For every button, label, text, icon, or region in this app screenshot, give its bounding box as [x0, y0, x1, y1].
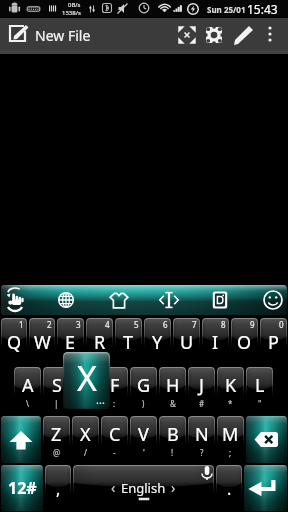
button[interactable]: Shift — [1, 416, 41, 463]
button[interactable]: C — [101, 416, 128, 463]
staticText: & — [170, 398, 176, 409]
button[interactable]: S — [43, 367, 70, 414]
staticText: / — [84, 447, 87, 458]
staticText: ; — [229, 447, 232, 458]
button[interactable]: 7 — [173, 318, 200, 365]
staticText: # — [199, 398, 205, 409]
button[interactable]: Edit — [232, 23, 256, 47]
staticText: K — [225, 373, 237, 398]
staticText: ... — [96, 392, 105, 407]
staticText: ? — [200, 447, 204, 458]
button[interactable]: K — [217, 367, 244, 414]
staticText: Z — [51, 422, 62, 447]
staticText: X — [77, 355, 97, 401]
button[interactable]: Fullscreen — [175, 23, 199, 47]
button[interactable]: 0 — [260, 318, 287, 365]
staticText: W — [34, 330, 51, 355]
staticText: Q — [7, 330, 22, 355]
button[interactable]: Backspace — [246, 416, 287, 463]
button[interactable]: Enter — [244, 465, 287, 511]
staticText: ‹ — [111, 478, 116, 497]
staticText: B — [167, 422, 179, 447]
button[interactable]: Emoji — [258, 285, 287, 315]
staticText: Sun 25/01 — [207, 4, 246, 15]
button[interactable]: More options — [259, 23, 281, 45]
staticText: 1 — [19, 319, 24, 330]
staticText: 9 — [250, 319, 255, 330]
button[interactable]: 8 — [202, 318, 229, 365]
button[interactable]: Language — [51, 285, 81, 315]
button[interactable]: D — [72, 367, 99, 414]
button[interactable]: A — [14, 367, 41, 414]
button[interactable]: Symbols — [1, 465, 43, 511]
button[interactable]: Clipboard — [205, 285, 235, 315]
staticText: 1538/s — [62, 9, 81, 17]
staticText: * — [228, 398, 233, 409]
button[interactable]: Space — [73, 465, 214, 511]
button[interactable]: J — [188, 367, 215, 414]
staticText: 15:43 — [247, 1, 278, 17]
button[interactable]: N — [188, 416, 215, 463]
staticText: - — [113, 447, 116, 458]
staticText: 3 — [76, 319, 81, 330]
button[interactable]: 4 — [86, 318, 113, 365]
button[interactable]: Z — [43, 416, 70, 463]
staticText: A — [22, 373, 34, 398]
staticText: › — [171, 478, 176, 497]
button[interactable]: 3 — [57, 318, 84, 365]
staticText: 0 — [279, 319, 284, 330]
button[interactable]: New File — [35, 26, 91, 45]
button[interactable]: Theme — [104, 285, 134, 315]
button[interactable]: Settings — [202, 23, 226, 47]
button[interactable]: X — [72, 416, 99, 463]
staticText: E — [65, 330, 76, 355]
staticText: : — [113, 398, 116, 409]
button[interactable]: 6 — [144, 318, 171, 365]
staticText: | — [54, 398, 59, 409]
button[interactable]: X key preview — [63, 352, 110, 409]
button[interactable]: B — [159, 416, 186, 463]
staticText: H — [166, 373, 180, 398]
button[interactable]: 9 — [231, 318, 258, 365]
button[interactable]: Edit file — [6, 22, 30, 46]
staticText: S — [52, 373, 62, 398]
button[interactable]: 5 — [115, 318, 142, 365]
button[interactable]: H — [159, 367, 186, 414]
staticText: @ — [53, 447, 61, 458]
staticText: C — [109, 422, 121, 447]
staticText: \ — [26, 398, 29, 409]
staticText: ! — [171, 447, 174, 458]
staticText: " — [258, 398, 262, 409]
staticText: , — [56, 478, 61, 500]
button[interactable]: , — [45, 465, 71, 511]
staticText: I — [212, 330, 219, 355]
staticText: N — [195, 422, 209, 447]
staticText: . — [227, 478, 232, 500]
staticText: 12# — [8, 477, 37, 499]
staticText: F — [110, 373, 120, 398]
staticText: P — [268, 330, 279, 355]
button[interactable]: Move cursor — [154, 285, 184, 315]
button[interactable]: F — [101, 367, 128, 414]
staticText: D — [79, 373, 93, 398]
button[interactable]: M — [217, 416, 244, 463]
button[interactable]: L — [246, 367, 273, 414]
staticText: R — [94, 330, 106, 355]
button[interactable]: Gesture input — [1, 285, 30, 315]
staticText: M — [222, 422, 239, 447]
staticText: Y — [152, 330, 163, 355]
staticText: 6 — [163, 319, 168, 330]
staticText: L — [255, 373, 265, 398]
button[interactable]: 1 — [1, 318, 27, 365]
staticText: X — [80, 422, 91, 447]
staticText: 4 — [105, 319, 110, 330]
staticText: 2 — [47, 319, 52, 330]
button[interactable]: 2 — [29, 318, 55, 365]
staticText: J — [199, 373, 204, 398]
button[interactable]: . — [216, 465, 242, 511]
staticText: U — [180, 330, 194, 355]
staticText: O — [237, 330, 252, 355]
staticText: English — [121, 479, 166, 497]
button[interactable]: V — [130, 416, 157, 463]
button[interactable]: G — [130, 367, 157, 414]
